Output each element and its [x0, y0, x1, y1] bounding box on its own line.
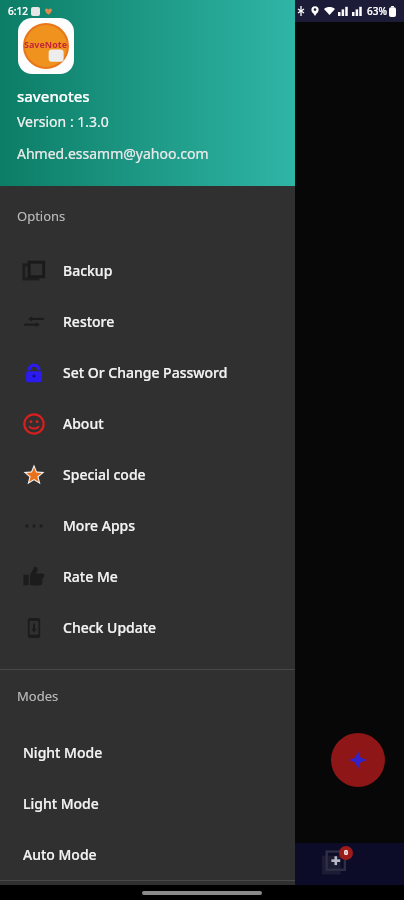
staticText: Ahmed.essamm@yahoo.com [17, 144, 209, 163]
staticText: More Apps [63, 516, 136, 535]
button[interactable]: Set Or Change Password [0, 347, 295, 398]
button[interactable]: Backup [0, 245, 295, 296]
button[interactable]: Light Mode [0, 778, 295, 829]
button[interactable]: Special code [0, 449, 295, 500]
staticText: 63% [367, 4, 387, 18]
staticText: SaveNote [24, 38, 68, 50]
staticText: Version : 1.3.0 [17, 112, 109, 131]
button[interactable]: Check Update [0, 602, 295, 653]
button[interactable]: Night Mode [0, 727, 295, 778]
staticText: Rate Me [63, 567, 118, 586]
staticText: About [63, 414, 104, 433]
staticText: Backup [63, 261, 113, 280]
button[interactable]: Add note [331, 733, 385, 787]
staticText: Auto Mode [23, 845, 97, 864]
button[interactable]: Auto Mode [0, 829, 295, 880]
button[interactable]: Restore [0, 296, 295, 347]
button[interactable]: Rate Me [0, 551, 295, 602]
staticText: Set Or Change Password [63, 363, 228, 382]
staticText: Options [17, 207, 66, 225]
staticText: Light Mode [23, 794, 99, 813]
staticText: Restore [63, 312, 115, 331]
staticText: 0 [344, 848, 349, 858]
staticText: Modes [17, 687, 59, 705]
button[interactable]: About [0, 398, 295, 449]
staticText: savenotes [17, 86, 90, 106]
staticText: 6:12 [8, 4, 28, 18]
staticText: Night Mode [23, 743, 103, 762]
staticText: Check Update [63, 618, 157, 637]
button[interactable]: More Apps [0, 500, 295, 551]
staticText: Special code [63, 465, 146, 484]
